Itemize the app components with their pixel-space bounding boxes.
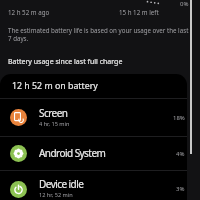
staticText: The estimated battery life is based on y… xyxy=(8,26,191,42)
staticText: 18% xyxy=(173,114,185,122)
staticText: 12 hr, 52 min xyxy=(39,191,73,199)
staticText: 0% xyxy=(180,0,189,8)
staticText: 12 h 52 m on battery xyxy=(12,80,98,92)
button[interactable]: 12 h 52 m on battery xyxy=(0,74,187,98)
button[interactable]: Screen xyxy=(0,99,187,136)
button[interactable]: Device idle xyxy=(0,171,187,200)
staticText: 4 hr, 15 min xyxy=(39,120,70,128)
staticText: Screen xyxy=(39,106,68,120)
staticText: Device idle xyxy=(39,177,84,191)
staticText: 4% xyxy=(176,150,185,158)
staticText: Battery usage since last full charge xyxy=(8,57,123,67)
staticText: 15 h 12 m left xyxy=(119,8,159,16)
button[interactable]: Android System xyxy=(0,137,187,170)
staticText: 12 h 52 m ago xyxy=(8,8,50,16)
staticText: Android System xyxy=(39,146,106,160)
staticText: 3% xyxy=(176,185,185,193)
